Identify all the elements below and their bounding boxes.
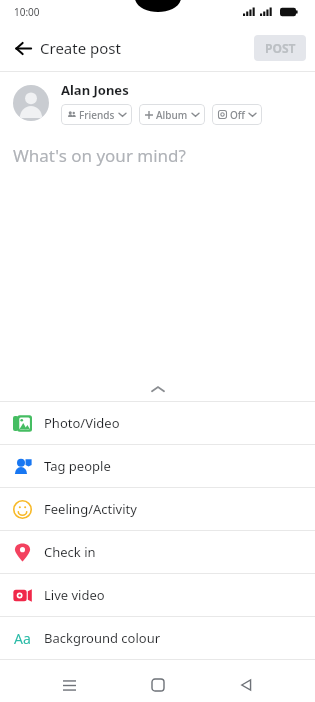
button[interactable]: Off	[212, 104, 262, 125]
staticText: 10:00	[14, 5, 40, 19]
button[interactable]: Photo/Video	[0, 402, 315, 444]
staticText: Check in	[44, 543, 96, 561]
staticText: Camera	[44, 672, 92, 690]
button[interactable]: Profile picture	[13, 85, 49, 121]
button[interactable]: Album	[139, 104, 205, 125]
staticText: What's on your mind?	[13, 144, 186, 167]
staticText: Live video	[44, 586, 105, 604]
button[interactable]: Camera	[0, 660, 315, 702]
button[interactable]: Live video	[0, 574, 315, 616]
button[interactable]: Friends	[61, 104, 132, 125]
staticText: Alan Jones	[61, 81, 129, 99]
button[interactable]: POST	[254, 35, 306, 61]
staticText: Feeling/Activity	[44, 500, 137, 518]
button[interactable]: Aa	[0, 617, 315, 659]
button[interactable]: Back	[226, 668, 266, 702]
button[interactable]: Check in	[0, 531, 315, 573]
staticText: Album	[156, 108, 188, 122]
button[interactable]: Back	[6, 31, 40, 65]
button[interactable]: Recent apps	[49, 668, 89, 702]
staticText: Background colour	[44, 629, 161, 647]
staticText: Friends	[79, 108, 115, 122]
staticText: Create post	[40, 38, 121, 58]
staticText: POST	[265, 40, 296, 56]
button[interactable]: Feeling/Activity	[0, 488, 315, 530]
staticText: Off	[230, 108, 245, 122]
staticText: Aa	[14, 629, 31, 648]
staticText: Photo/Video	[44, 414, 120, 432]
button[interactable]: Tag people	[0, 445, 315, 487]
button[interactable]: Expand options	[0, 377, 315, 401]
button[interactable]: Home	[138, 668, 178, 702]
staticText: Tag people	[44, 457, 111, 475]
